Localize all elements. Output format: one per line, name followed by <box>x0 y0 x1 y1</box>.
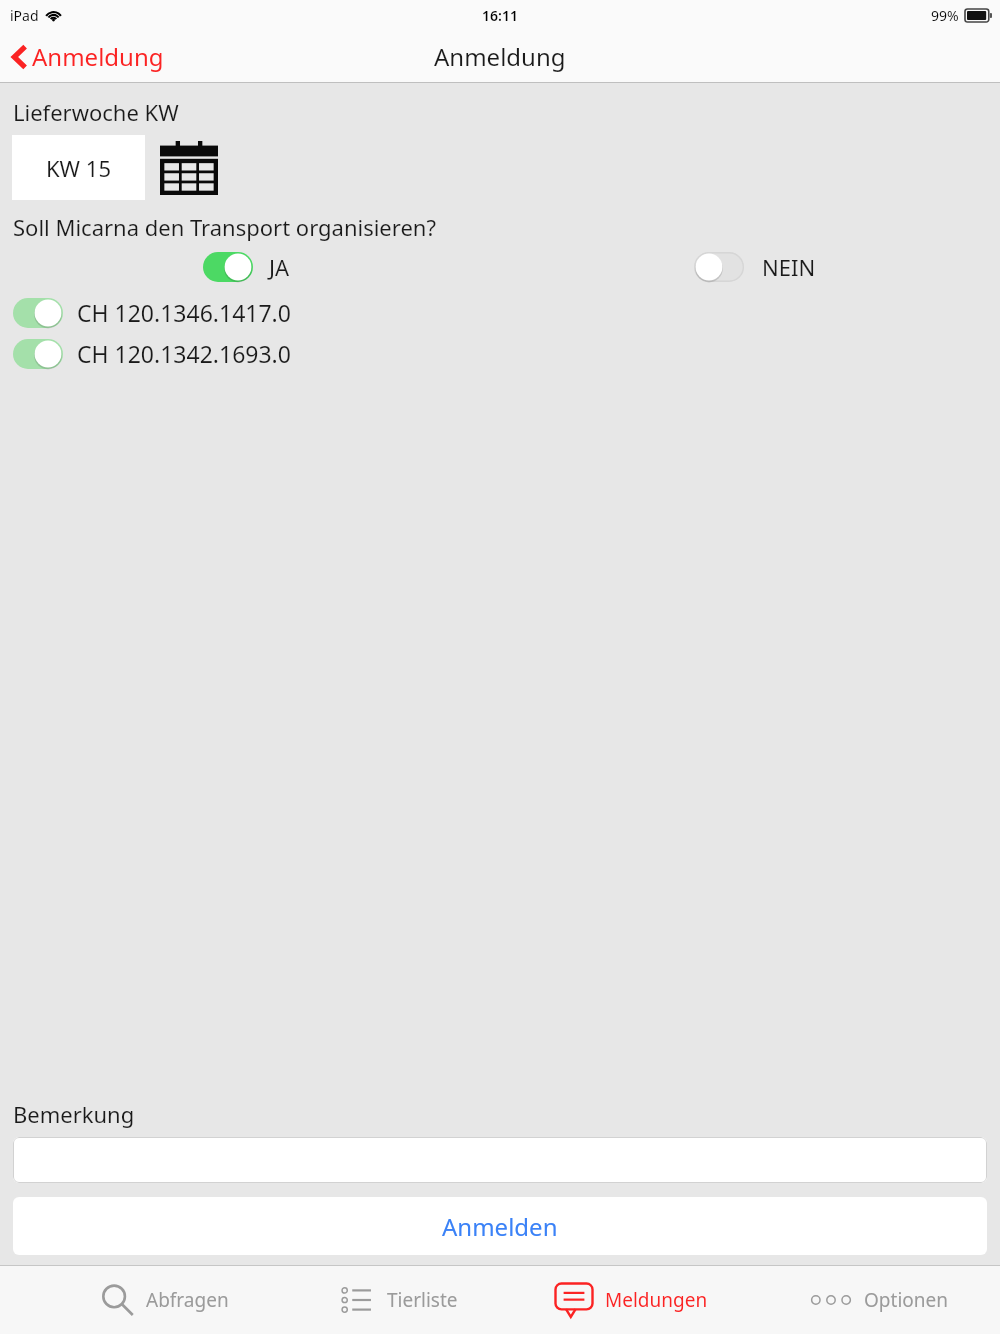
staticText: Anmeldung <box>434 40 566 73</box>
staticText: 16:11 <box>482 6 518 25</box>
staticText: Lieferwoche KW <box>13 97 179 127</box>
staticText: Anmeldung <box>32 40 164 73</box>
staticText: Meldungen <box>605 1287 708 1313</box>
button[interactable] <box>13 1137 987 1183</box>
button[interactable]: Optionen <box>808 1287 948 1313</box>
staticText: CH 120.1346.1417.0 <box>77 297 291 328</box>
button[interactable]: Transport NEIN <box>694 252 744 282</box>
button[interactable]: Kalender <box>158 139 220 197</box>
staticText: NEIN <box>762 252 816 282</box>
staticText: KW 15 <box>46 153 111 183</box>
staticText: Abfragen <box>146 1287 229 1313</box>
staticText: Anmelden <box>442 1210 558 1243</box>
button[interactable]: Abfragen <box>98 1282 229 1318</box>
button[interactable]: Anmelden <box>13 1197 987 1255</box>
staticText: Optionen <box>864 1287 948 1313</box>
staticText: Tierliste <box>387 1287 458 1313</box>
button[interactable]: Transport JA <box>203 252 253 282</box>
button[interactable]: KW 15 <box>12 135 145 200</box>
button[interactable]: Tierliste <box>339 1285 458 1315</box>
button[interactable]: CH 120.1346.1417.0 <box>13 298 63 328</box>
staticText: 99% <box>931 6 959 25</box>
staticText: CH 120.1342.1693.0 <box>77 338 291 369</box>
button[interactable]: Anmeldung <box>12 40 164 73</box>
staticText: JA <box>269 252 290 282</box>
staticText: Soll Micarna den Transport organisieren? <box>13 212 436 242</box>
button[interactable]: Meldungen <box>553 1282 708 1318</box>
staticText: iPad <box>10 6 39 25</box>
button[interactable]: CH 120.1342.1693.0 <box>13 339 63 369</box>
button[interactable]: CH 120.1346.1417.0 <box>0 297 1000 328</box>
button[interactable]: CH 120.1342.1693.0 <box>0 338 1000 369</box>
staticText: Bemerkung <box>13 1099 135 1129</box>
